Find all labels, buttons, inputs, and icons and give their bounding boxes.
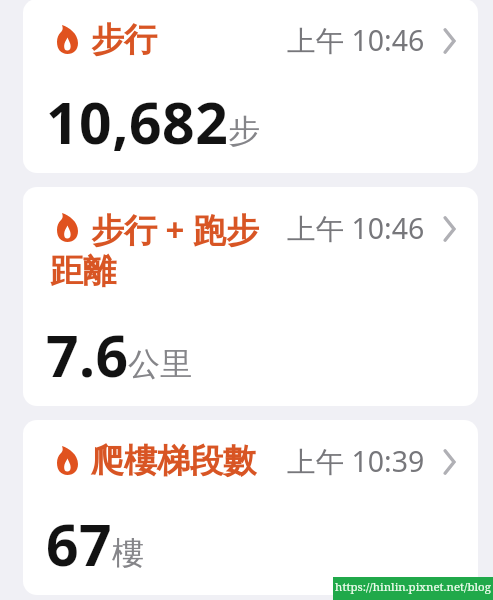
other: Show details <box>442 449 456 475</box>
staticText: 公里 <box>128 344 192 384</box>
staticText: 10,682 <box>46 83 229 161</box>
button[interactable]: 步行 + 跑步 <box>23 187 478 406</box>
button[interactable]: 爬樓梯段數 <box>23 420 478 595</box>
staticText: https://hinlin.pixnet.net/blog <box>335 579 491 595</box>
other: Show details <box>442 28 456 54</box>
staticText: 步 <box>228 111 260 151</box>
staticText: 步行 + 跑步 <box>91 207 260 252</box>
other: Show details <box>442 216 456 242</box>
staticText: 上午 10:46 <box>287 209 425 248</box>
staticText: 距離 <box>50 250 116 292</box>
button[interactable]: 步行 <box>23 0 478 173</box>
staticText: 爬樓梯段數 <box>91 440 256 482</box>
staticText: 上午 10:46 <box>287 21 425 60</box>
staticText: 樓 <box>112 533 144 573</box>
staticText: 步行 <box>91 19 157 61</box>
staticText: 7.6 <box>46 316 129 394</box>
staticText: 上午 10:39 <box>287 442 425 481</box>
staticText: 67 <box>46 505 113 583</box>
